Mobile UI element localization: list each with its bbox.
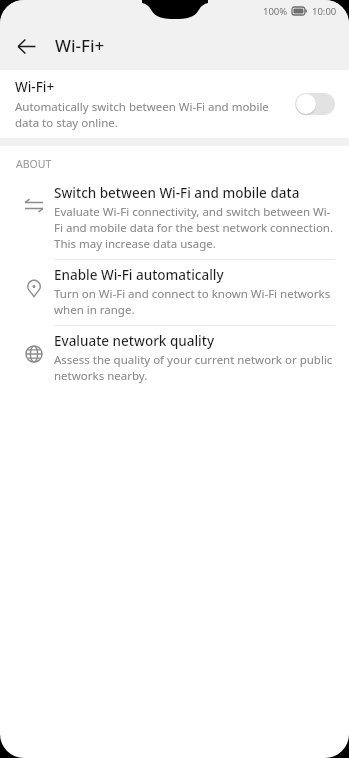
staticText: Assess the quality of your current netwo…	[54, 352, 335, 384]
staticText: Enable Wi-Fi automatically	[54, 266, 224, 284]
button[interactable]: Network quality	[0, 326, 349, 392]
other: Location	[24, 278, 44, 298]
button[interactable]: Wi-Fi+ toggle	[295, 93, 335, 115]
staticText: Wi-Fi+	[55, 34, 105, 57]
staticText: Switch between Wi-Fi and mobile data	[54, 184, 300, 202]
staticText: Evaluate network quality	[54, 332, 215, 350]
staticText: ABOUT	[16, 157, 52, 171]
staticText: Automatically switch between Wi-Fi and m…	[15, 99, 283, 130]
other: Network quality	[24, 344, 44, 364]
staticText: 100%	[263, 5, 288, 18]
staticText: 10:00	[312, 5, 337, 18]
button[interactable]: Wi-Fi+	[0, 70, 349, 138]
other: Switch between networks	[24, 196, 44, 216]
staticText: Turn on Wi-Fi and connect to known Wi-Fi…	[54, 286, 335, 318]
button[interactable]: Back	[4, 24, 48, 68]
button[interactable]: Location	[0, 260, 349, 326]
staticText: Evaluate Wi-Fi connectivity, and switch …	[54, 204, 335, 252]
button[interactable]: Switch between networks	[0, 178, 349, 260]
staticText: Wi-Fi+	[15, 78, 55, 96]
